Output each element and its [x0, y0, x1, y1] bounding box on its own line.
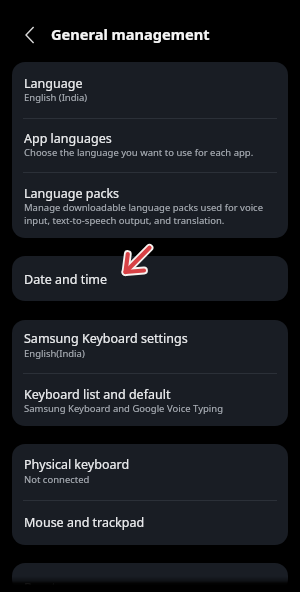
staticText: General management — [51, 24, 210, 44]
staticText: Physical keyboard — [24, 456, 130, 473]
staticText: Manage downloadable language packs used … — [24, 201, 278, 227]
button[interactable]: Physical keyboard — [12, 444, 288, 500]
button[interactable]: Date and time — [12, 256, 288, 301]
button[interactable]: Back — [10, 15, 50, 55]
button[interactable]: Language packs — [12, 173, 288, 238]
staticText: English (India) — [24, 91, 88, 104]
button[interactable]: Keyboard list and default — [12, 374, 288, 426]
staticText: Reset — [24, 579, 57, 592]
button[interactable]: Samsung Keyboard settings — [12, 320, 288, 373]
staticText: English(India) — [24, 347, 85, 360]
staticText: Choose the language you want to use for … — [24, 146, 254, 159]
button[interactable]: Mouse and trackpad — [12, 501, 288, 545]
button[interactable]: App languages — [12, 119, 288, 172]
staticText: Language — [24, 75, 83, 92]
staticText: Language packs — [24, 185, 120, 202]
staticText: App languages — [24, 130, 112, 147]
staticText: Not connected — [24, 473, 90, 486]
staticText: Samsung Keyboard settings — [24, 330, 188, 347]
staticText: Mouse and trackpad — [24, 514, 145, 531]
staticText: Date and time — [24, 271, 108, 288]
staticText: Keyboard list and default — [24, 386, 171, 403]
button[interactable]: Language — [12, 62, 288, 118]
button[interactable]: Reset — [12, 563, 288, 592]
staticText: Samsung Keyboard and Google Voice Typing — [24, 402, 223, 415]
